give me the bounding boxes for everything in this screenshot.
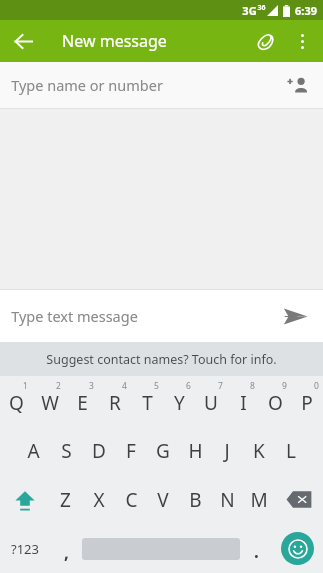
button[interactable]: , <box>50 524 82 573</box>
button[interactable]: Z <box>49 475 82 524</box>
staticText: 5 <box>154 380 159 392</box>
staticText: Type name or number <box>11 75 163 95</box>
staticText: ?123 <box>11 540 39 558</box>
staticText: 9 <box>282 380 287 392</box>
button[interactable]: V <box>147 475 179 524</box>
staticText: 3 <box>89 380 94 392</box>
button[interactable]: R <box>99 376 131 426</box>
button[interactable]: D <box>83 426 115 475</box>
button[interactable]: A <box>17 426 50 475</box>
button[interactable]: Space <box>82 524 240 573</box>
staticText: N <box>220 487 235 513</box>
button[interactable]: S <box>50 426 83 475</box>
staticText: U <box>204 390 218 416</box>
staticText: 6 <box>186 380 191 392</box>
staticText: 6:39 <box>295 3 317 18</box>
staticText: S <box>61 438 72 464</box>
staticText: K <box>253 438 265 464</box>
staticText: 36 <box>257 3 266 13</box>
button[interactable]: T <box>131 376 163 426</box>
button[interactable]: M <box>243 475 275 524</box>
button[interactable]: Backspace <box>275 475 323 524</box>
button[interactable]: Send <box>275 296 315 336</box>
staticText: 3G <box>242 3 257 18</box>
button[interactable]: U <box>195 376 227 426</box>
button[interactable]: I <box>227 376 259 426</box>
staticText: , <box>64 541 69 564</box>
staticText: L <box>286 438 296 464</box>
button[interactable]: Type text message <box>0 290 323 342</box>
button[interactable]: . <box>240 524 272 573</box>
staticText: B <box>189 487 202 513</box>
staticText: 1 <box>23 380 28 392</box>
staticText: 4 <box>122 380 127 392</box>
staticText: Type text message <box>11 306 138 326</box>
staticText: . <box>254 540 259 563</box>
staticText: H <box>188 438 203 464</box>
button[interactable]: Emoji <box>272 524 323 573</box>
button[interactable]: Add contact <box>283 70 313 100</box>
button[interactable]: Shift <box>0 475 49 524</box>
staticText: 2 <box>56 380 61 392</box>
button[interactable]: Y <box>163 376 195 426</box>
button[interactable]: P <box>291 376 323 426</box>
staticText: 7 <box>218 380 223 392</box>
staticText: F <box>126 438 136 464</box>
staticText: A <box>27 438 40 464</box>
staticText: P <box>301 390 313 416</box>
staticText: R <box>109 390 121 416</box>
button[interactable]: Suggest contact names? Touch for info. <box>0 342 323 376</box>
button[interactable]: Attach <box>247 22 285 60</box>
staticText: W <box>41 390 59 416</box>
staticText: G <box>156 438 170 464</box>
staticText: O <box>268 390 283 416</box>
staticText: X <box>93 487 105 513</box>
button[interactable]: Back <box>6 24 40 58</box>
button[interactable]: O <box>259 376 291 426</box>
staticText: 0 <box>314 380 319 392</box>
button[interactable]: G <box>147 426 179 475</box>
button[interactable]: H <box>179 426 211 475</box>
staticText: Suggest contact names? Touch for info. <box>46 351 277 368</box>
button[interactable]: N <box>211 475 243 524</box>
button[interactable]: K <box>243 426 275 475</box>
staticText: C <box>125 487 138 513</box>
button[interactable]: C <box>115 475 147 524</box>
button[interactable]: Type name or number <box>0 62 323 108</box>
button[interactable]: B <box>179 475 211 524</box>
staticText: J <box>224 438 230 464</box>
button[interactable]: L <box>275 426 307 475</box>
staticText: Q <box>9 390 24 416</box>
staticText: Z <box>60 487 71 513</box>
staticText: Y <box>174 390 185 416</box>
staticText: I <box>240 390 247 416</box>
button[interactable]: ?123 <box>0 524 50 573</box>
staticText: E <box>77 390 88 416</box>
staticText: M <box>250 487 268 513</box>
staticText: New message <box>62 30 167 52</box>
staticText: T <box>142 390 153 416</box>
staticText: V <box>157 487 169 513</box>
button[interactable]: More options <box>285 24 319 58</box>
button[interactable]: E <box>66 376 99 426</box>
staticText: 8 <box>250 380 255 392</box>
button[interactable]: J <box>211 426 243 475</box>
button[interactable]: X <box>82 475 115 524</box>
staticText: D <box>92 438 106 464</box>
button[interactable]: W <box>33 376 66 426</box>
button[interactable]: Q <box>0 376 33 426</box>
button[interactable]: F <box>115 426 147 475</box>
